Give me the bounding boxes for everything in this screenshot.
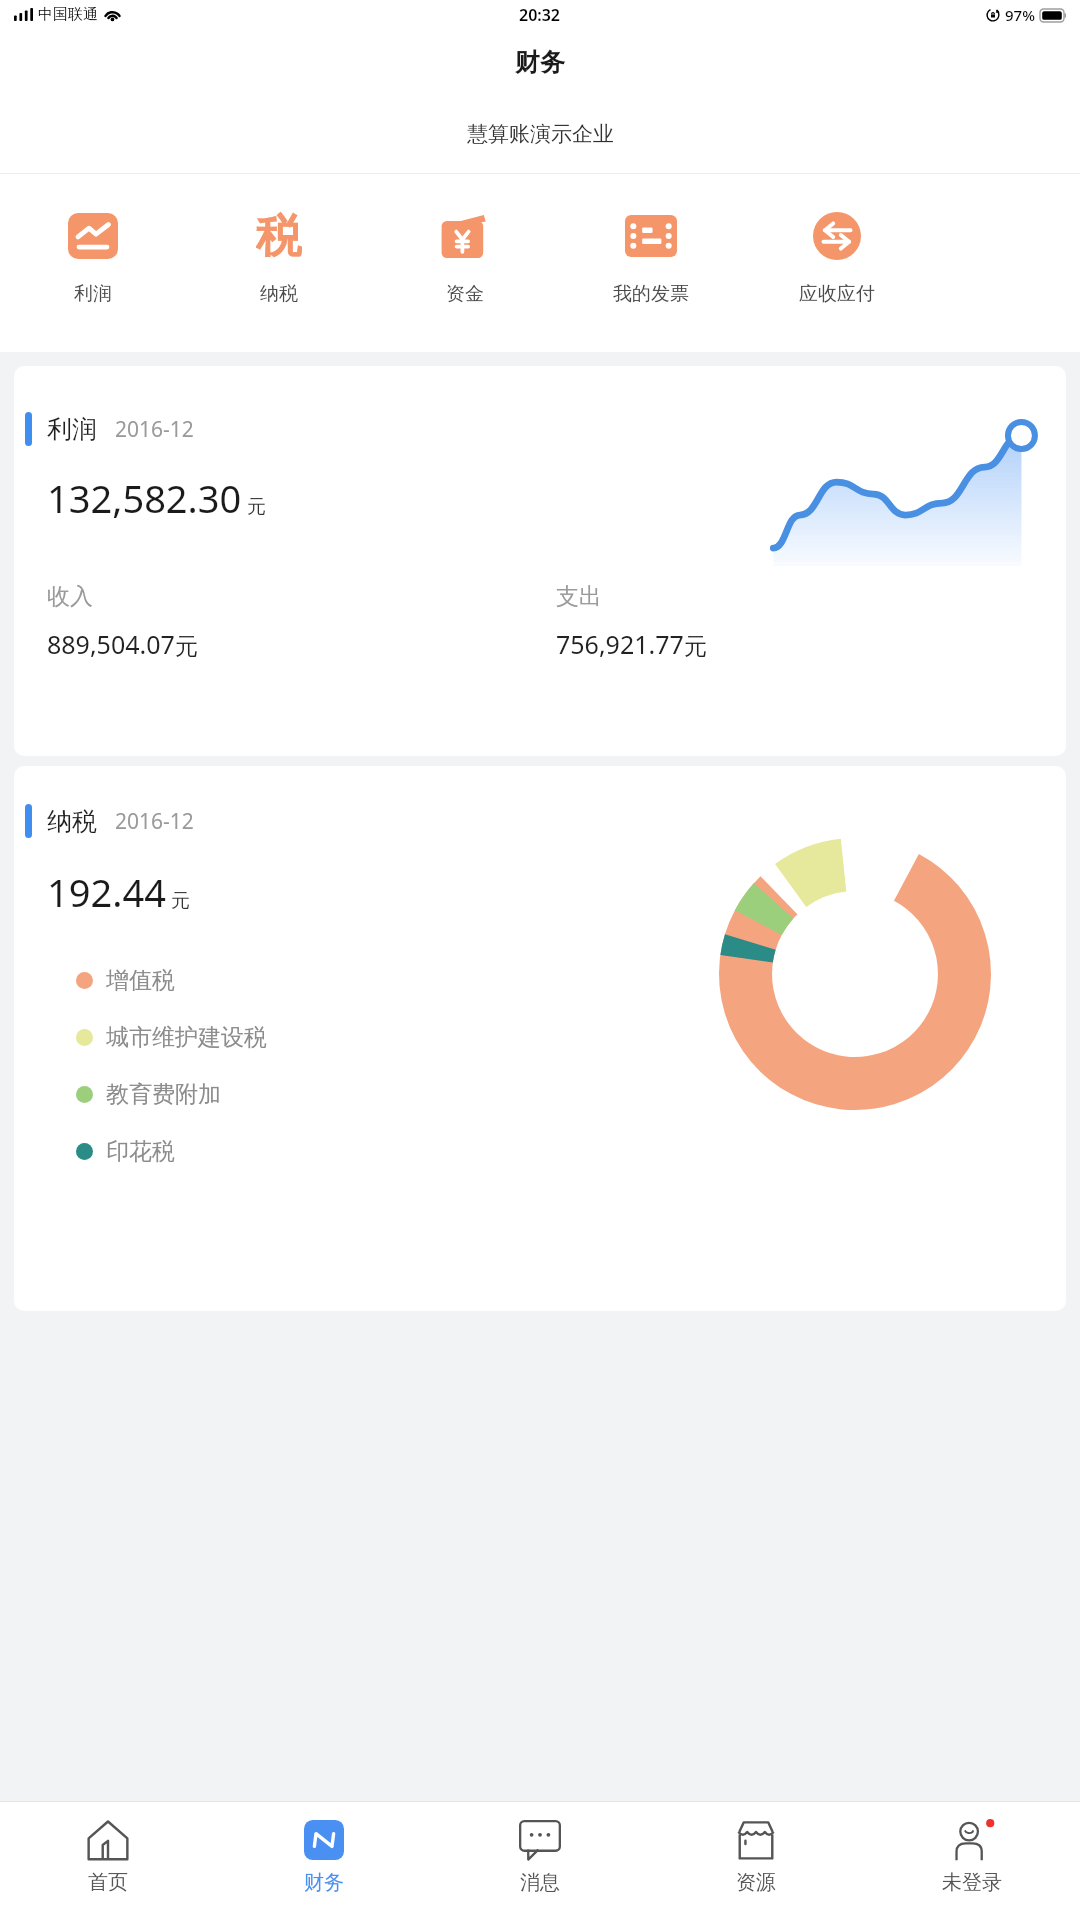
staticText: 利润 — [74, 282, 112, 306]
staticText: 2016-12 — [115, 807, 194, 836]
staticText: 未登录 — [942, 1870, 1002, 1895]
staticText: 97% — [1005, 5, 1035, 25]
staticText: 2016-12 — [115, 415, 194, 444]
staticText: 消息 — [520, 1870, 560, 1895]
staticText: 我的发票 — [613, 282, 689, 306]
staticText: 印花税 — [106, 1137, 175, 1166]
staticText: 元 — [171, 889, 190, 913]
staticText: 慧算账演示企业 — [467, 121, 614, 147]
button[interactable]: 纳税 — [14, 766, 1066, 1311]
staticText: 20:32 — [519, 4, 561, 26]
button[interactable]: 首页 — [0, 1802, 216, 1920]
staticText: 中国联通 — [38, 5, 98, 24]
staticText: 资金 — [446, 282, 484, 306]
staticText: 元 — [175, 632, 198, 661]
button[interactable]: 慧算账演示企业 — [0, 95, 1080, 173]
staticText: 增值税 — [106, 966, 175, 995]
staticText: 利润 — [47, 414, 97, 445]
button[interactable]: 应收应付 — [744, 174, 930, 352]
button[interactable]: 财务 — [216, 1802, 432, 1920]
button[interactable]: 消息 — [432, 1802, 648, 1920]
staticText: 192.44 — [47, 866, 166, 918]
button[interactable]: 资金 — [372, 174, 558, 352]
staticText: 756,921.77 — [556, 627, 684, 661]
button[interactable]: 利润 — [0, 174, 186, 352]
staticText: 城市维护建设税 — [106, 1023, 267, 1052]
staticText: 收入 — [47, 582, 93, 611]
button[interactable]: 我的发票 — [558, 174, 744, 352]
staticText: 财务 — [304, 1870, 344, 1895]
staticText: 应收应付 — [799, 282, 875, 306]
staticText: 132,582.30 — [47, 472, 242, 524]
staticText: 资源 — [736, 1870, 776, 1895]
staticText: 元 — [247, 495, 266, 519]
staticText: 教育费附加 — [106, 1080, 221, 1109]
staticText: 支出 — [556, 582, 602, 611]
button[interactable]: 资源 — [648, 1802, 864, 1920]
staticText: 财务 — [515, 47, 565, 78]
button[interactable]: 税 — [186, 174, 372, 352]
button[interactable]: 未登录 — [864, 1802, 1080, 1920]
staticText: 纳税 — [47, 806, 97, 837]
staticText: 首页 — [88, 1870, 128, 1895]
staticText: 税 — [256, 208, 302, 264]
staticText: 889,504.07 — [47, 627, 175, 661]
button[interactable]: 利润 — [14, 366, 1066, 756]
staticText: 纳税 — [260, 282, 298, 306]
staticText: 元 — [684, 632, 707, 661]
